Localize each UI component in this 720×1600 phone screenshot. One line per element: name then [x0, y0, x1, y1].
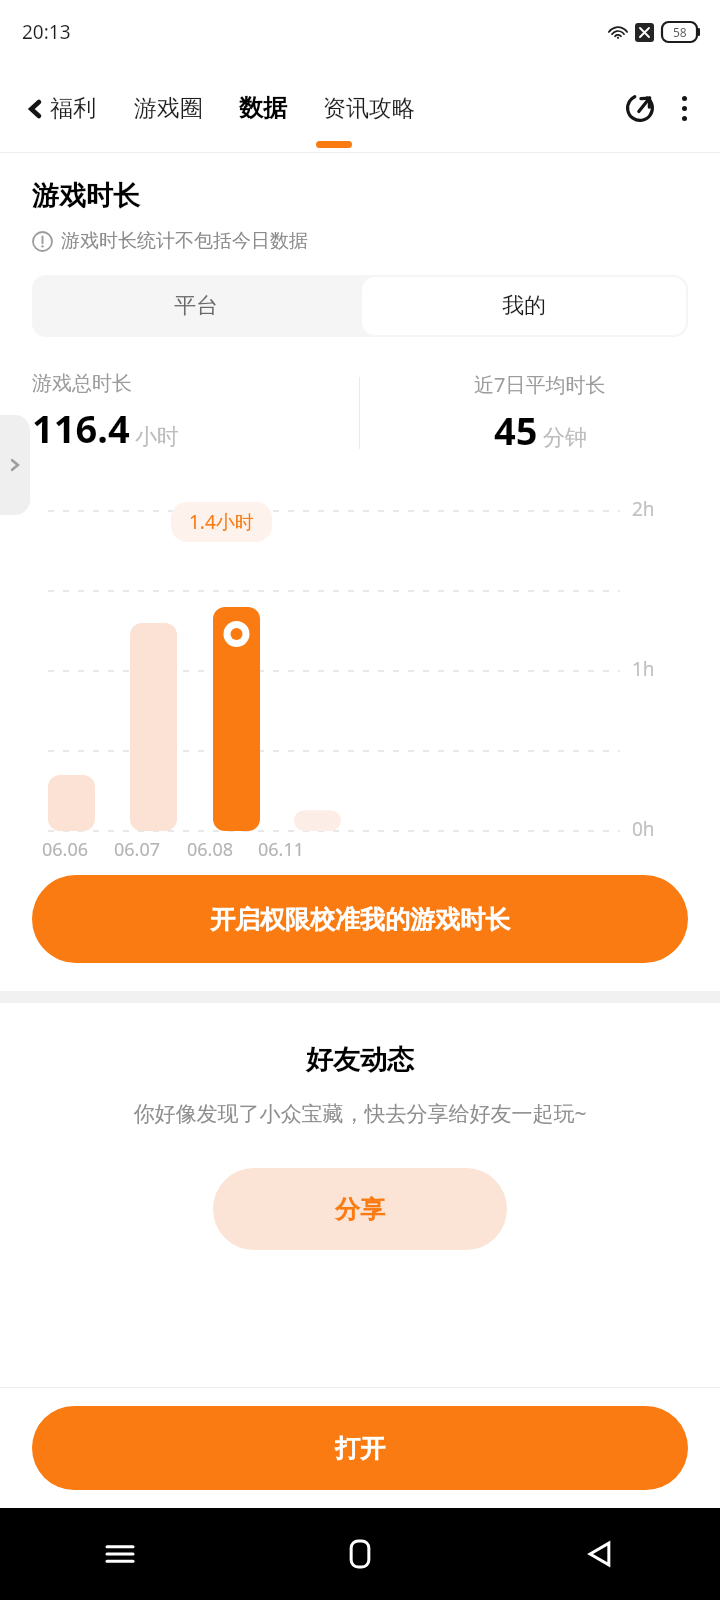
- button[interactable]: More options: [662, 86, 706, 130]
- staticText: 分钟: [543, 424, 587, 452]
- staticText: 06.11: [258, 837, 305, 862]
- button[interactable]: Recents: [0, 1508, 240, 1600]
- button[interactable]: 数据: [233, 83, 293, 133]
- staticText: 45: [494, 404, 538, 455]
- staticText: 小时: [135, 423, 179, 451]
- button[interactable]: 开启权限校准我的游戏时长: [32, 875, 688, 963]
- staticText: 58: [673, 24, 687, 40]
- button[interactable]: Expand panel: [0, 415, 30, 515]
- staticText: 数据: [239, 93, 287, 123]
- staticText: 开启权限校准我的游戏时长: [210, 904, 510, 935]
- staticText: 1.4小时: [189, 509, 254, 535]
- button[interactable]: Home: [240, 1508, 480, 1600]
- staticText: 06.08: [187, 837, 234, 862]
- button[interactable]: 游戏圈: [128, 84, 209, 133]
- staticText: 116.4: [32, 402, 130, 454]
- staticText: 06.06: [42, 837, 89, 862]
- staticText: 游戏圈: [134, 94, 203, 123]
- staticText: 福利: [50, 94, 96, 123]
- staticText: 好友动态: [306, 1043, 414, 1077]
- staticText: 0h: [632, 816, 655, 842]
- button[interactable]: 打开: [32, 1406, 688, 1490]
- staticText: 游戏时长统计不包括今日数据: [61, 229, 308, 253]
- other: Back: [24, 98, 46, 120]
- staticText: 平台: [174, 292, 218, 320]
- staticText: 游戏总时长: [32, 371, 132, 396]
- button[interactable]: 资讯攻略: [317, 84, 421, 133]
- staticText: 06.07: [114, 837, 161, 862]
- staticText: 1h: [632, 656, 655, 682]
- staticText: 游戏时长: [32, 179, 140, 213]
- button[interactable]: Back: [480, 1508, 720, 1600]
- button[interactable]: 我的: [362, 277, 686, 335]
- button[interactable]: Back: [18, 86, 102, 131]
- staticText: 20:13: [22, 19, 71, 45]
- button[interactable]: 平台: [32, 275, 360, 337]
- button[interactable]: Share: [618, 86, 662, 130]
- staticText: 你好像发现了小众宝藏，快去分享给好友一起玩~: [133, 1099, 587, 1128]
- button[interactable]: 分享: [213, 1168, 507, 1250]
- staticText: 近7日平均时长: [474, 371, 606, 398]
- staticText: 打开: [335, 1433, 385, 1464]
- staticText: 我的: [502, 292, 546, 320]
- staticText: 分享: [335, 1194, 385, 1225]
- staticText: 2h: [632, 496, 655, 522]
- staticText: 资讯攻略: [323, 94, 415, 123]
